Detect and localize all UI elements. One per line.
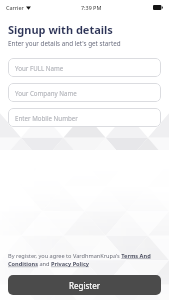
other: Battery	[153, 5, 163, 10]
button[interactable]: Your FULL Name	[8, 58, 161, 77]
button[interactable]: Register	[8, 275, 161, 295]
button[interactable]: Your Company Name	[8, 83, 161, 102]
other: Wi-Fi	[26, 5, 31, 10]
staticText: Enter Mobile Number	[15, 114, 78, 122]
staticText: Your FULL Name	[15, 64, 64, 72]
staticText: Your Company Name	[15, 89, 77, 97]
staticText: Carrier	[6, 4, 24, 11]
button[interactable]: Enter Mobile Number	[8, 108, 161, 127]
staticText: By register, you agree to VardhmanKrupa'…	[8, 252, 161, 268]
staticText: Register	[69, 280, 101, 291]
staticText: Signup with details	[8, 22, 113, 37]
staticText: Enter your details and let's get started	[8, 39, 121, 48]
staticText: 7:39 PM	[81, 4, 102, 11]
